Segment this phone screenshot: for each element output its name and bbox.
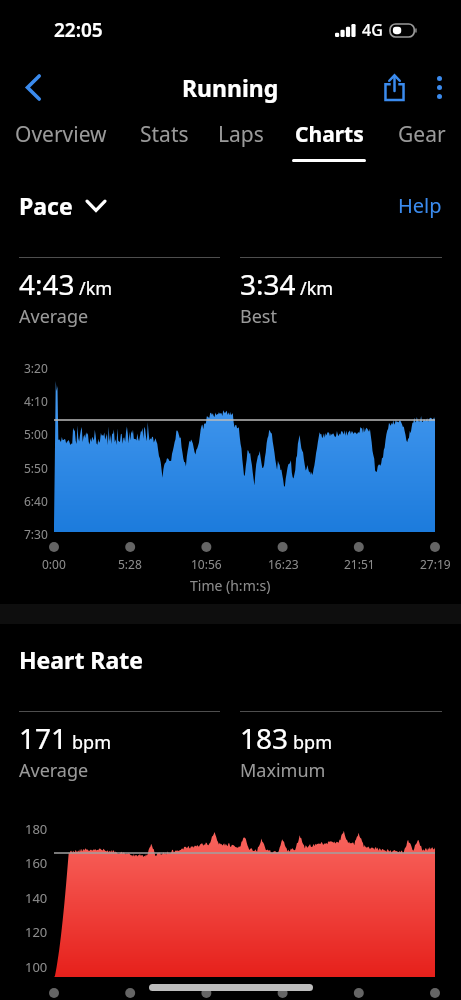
staticText: 21:51 xyxy=(344,556,375,572)
button[interactable]: Share xyxy=(371,64,417,110)
staticText: /km xyxy=(79,276,113,301)
staticText: Help xyxy=(398,192,442,219)
button[interactable]: Pace xyxy=(19,190,106,221)
button[interactable]: More options xyxy=(417,65,461,109)
staticText: 10:56 xyxy=(191,556,222,572)
staticText: 4:10 xyxy=(24,393,48,409)
staticText: Overview xyxy=(15,120,107,149)
staticText: 7:30 xyxy=(24,526,48,542)
staticText: Heart Rate xyxy=(19,644,143,675)
staticText: Stats xyxy=(140,120,189,149)
staticText: Average xyxy=(19,304,89,329)
staticText: 27:19 xyxy=(420,556,451,572)
staticText: 16:23 xyxy=(268,556,299,572)
button[interactable]: Laps xyxy=(189,116,293,174)
staticText: 22:05 xyxy=(54,17,103,43)
staticText: 3:34 xyxy=(240,265,296,303)
staticText: 120 xyxy=(25,923,48,941)
button[interactable]: Back xyxy=(10,64,56,110)
staticText: Laps xyxy=(218,120,264,149)
staticText: 5:28 xyxy=(118,556,142,572)
staticText: 140 xyxy=(25,889,48,907)
staticText: 171 xyxy=(19,719,68,757)
staticText: bpm xyxy=(72,730,111,755)
staticText: 4:43 xyxy=(19,265,75,303)
staticText: /km xyxy=(300,276,334,301)
staticText: 5:50 xyxy=(24,460,48,476)
staticText: 3:20 xyxy=(24,360,48,376)
staticText: 5:00 xyxy=(24,426,48,442)
staticText: Best xyxy=(240,304,277,329)
staticText: 100 xyxy=(25,958,48,976)
staticText: Pace xyxy=(19,190,73,221)
button[interactable]: Stats xyxy=(112,116,216,174)
staticText: Charts xyxy=(295,120,364,149)
button[interactable]: Overview xyxy=(9,116,113,174)
staticText: 4G xyxy=(362,19,383,41)
staticText: Running xyxy=(182,72,279,103)
staticText: 180 xyxy=(25,820,48,838)
staticText: 183 xyxy=(240,719,289,757)
staticText: bpm xyxy=(293,730,332,755)
staticText: 0:00 xyxy=(42,556,66,572)
button[interactable]: Gear xyxy=(370,116,461,174)
button[interactable]: Help xyxy=(398,192,442,219)
staticText: 160 xyxy=(25,854,48,872)
staticText: Time (h:m:s) xyxy=(190,576,271,595)
staticText: Average xyxy=(19,758,89,783)
staticText: Maximum xyxy=(240,758,326,783)
button[interactable]: Charts xyxy=(277,116,381,174)
staticText: 6:40 xyxy=(24,493,48,509)
staticText: Gear xyxy=(398,120,446,149)
